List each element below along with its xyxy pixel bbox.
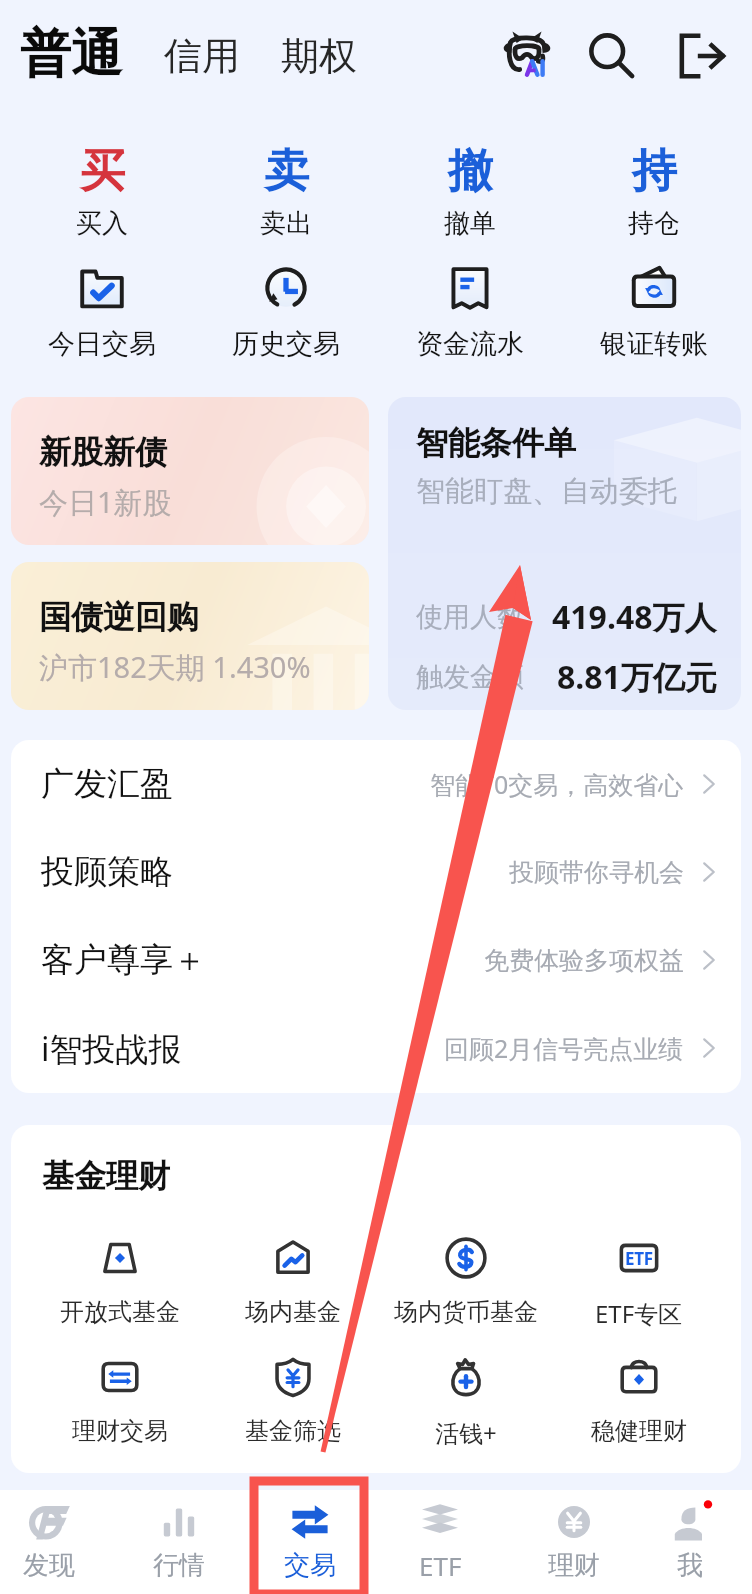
- staticText: 国债逆回购: [39, 597, 199, 637]
- button[interactable]: 国债逆回购: [11, 562, 369, 710]
- button[interactable]: 信用: [164, 32, 240, 80]
- staticText: 信用: [164, 32, 240, 80]
- button[interactable]: 客户尊享＋: [11, 916, 741, 1004]
- staticText: 理财交易: [72, 1416, 168, 1446]
- button[interactable]: 基金筛选: [206, 1356, 379, 1446]
- button[interactable]: 银证转账: [562, 265, 746, 361]
- staticText: 历史交易: [232, 327, 340, 361]
- button[interactable]: i智投战报: [11, 1004, 741, 1092]
- staticText: 撤单: [444, 207, 496, 240]
- staticText: 银证转账: [600, 327, 708, 361]
- button[interactable]: 期权: [281, 32, 357, 80]
- staticText: 行情: [153, 1549, 205, 1582]
- staticText: 智能T0交易，高效省心: [430, 767, 684, 801]
- button[interactable]: 场内基金: [206, 1237, 379, 1327]
- button[interactable]: 我: [635, 1490, 745, 1594]
- button[interactable]: 行情: [124, 1490, 234, 1594]
- staticText: ETF: [625, 1247, 653, 1270]
- staticText: 触发金额: [416, 660, 524, 694]
- button[interactable]: 普通: [20, 24, 122, 88]
- button[interactable]: 持: [562, 143, 746, 240]
- button[interactable]: 买: [10, 143, 194, 240]
- button[interactable]: 投顾策略: [11, 828, 741, 916]
- staticText: 理财: [548, 1549, 600, 1582]
- staticText: 稳健理财: [591, 1416, 687, 1446]
- button[interactable]: 活钱+: [379, 1356, 552, 1449]
- staticText: 8.81万亿元: [557, 655, 717, 699]
- staticText: 智能条件单: [416, 423, 576, 463]
- button[interactable]: 卖: [194, 143, 378, 240]
- staticText: 普通: [20, 22, 122, 86]
- staticText: 419.48万人: [552, 595, 717, 639]
- button[interactable]: 历史交易: [194, 265, 378, 361]
- staticText: 卖出: [260, 207, 312, 240]
- staticText: 广发汇盈: [41, 763, 173, 805]
- staticText: 持: [632, 143, 677, 200]
- staticText: 今日1新股: [39, 482, 172, 522]
- staticText: 发现: [23, 1549, 75, 1582]
- staticText: 今日交易: [48, 327, 156, 361]
- staticText: 撤: [448, 143, 493, 200]
- staticText: 场内基金: [245, 1297, 341, 1327]
- staticText: 基金筛选: [245, 1416, 341, 1446]
- staticText: 免费体验多项权益: [484, 945, 684, 976]
- button[interactable]: 场内货币基金: [379, 1237, 552, 1327]
- staticText: 交易: [284, 1549, 336, 1582]
- button[interactable]: 广发汇盈: [11, 740, 741, 828]
- staticText: 期权: [281, 32, 357, 80]
- staticText: 客户尊享＋: [41, 939, 206, 981]
- button[interactable]: ETF: [385, 1490, 495, 1594]
- staticText: 买: [80, 143, 125, 200]
- staticText: 持仓: [628, 207, 680, 240]
- staticText: 投顾带你寻机会: [509, 857, 684, 888]
- button[interactable]: 新股新债: [11, 397, 369, 545]
- staticText: 活钱+: [435, 1416, 497, 1449]
- staticText: 开放式基金: [60, 1297, 180, 1327]
- staticText: 我: [677, 1549, 703, 1582]
- staticText: ETF专区: [595, 1297, 683, 1330]
- staticText: 基金理财: [42, 1156, 170, 1196]
- staticText: 资金流水: [416, 327, 524, 361]
- button[interactable]: 理财交易: [33, 1356, 206, 1446]
- button[interactable]: 今日交易: [10, 265, 194, 361]
- button[interactable]: Log out: [664, 18, 740, 94]
- button[interactable]: 智能条件单: [388, 397, 741, 710]
- button[interactable]: 开放式基金: [33, 1237, 206, 1327]
- staticText: 投顾策略: [41, 851, 173, 893]
- button[interactable]: 撤: [378, 143, 562, 240]
- button[interactable]: 交易: [255, 1490, 365, 1594]
- button[interactable]: 稳健理财: [552, 1356, 725, 1446]
- staticText: i智投战报: [41, 1026, 182, 1071]
- staticText: 新股新债: [39, 432, 167, 472]
- staticText: 智能盯盘、自动委托: [416, 473, 677, 510]
- button[interactable]: Search: [574, 18, 650, 94]
- button[interactable]: 理财: [519, 1490, 629, 1594]
- button[interactable]: ETF: [552, 1237, 725, 1330]
- button[interactable]: 发现: [0, 1490, 104, 1594]
- staticText: 回顾2月信号亮点业绩: [444, 1031, 684, 1065]
- staticText: 使用人数: [416, 600, 524, 634]
- button[interactable]: 资金流水: [378, 265, 562, 361]
- staticText: 沪市182天期 1.430%: [39, 647, 311, 687]
- button[interactable]: AI assistant: [489, 18, 565, 94]
- staticText: ETF: [419, 1548, 462, 1583]
- staticText: 场内货币基金: [394, 1297, 538, 1327]
- staticText: 买入: [76, 207, 128, 240]
- staticText: 卖: [264, 143, 309, 200]
